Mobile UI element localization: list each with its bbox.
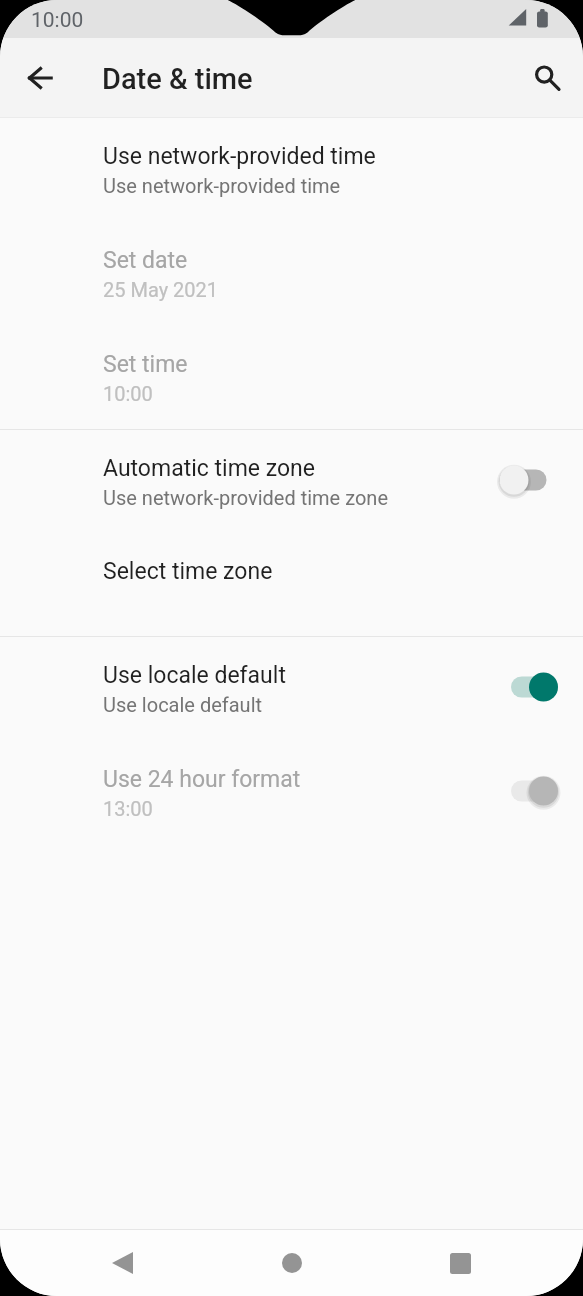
staticText: 10:00: [31, 8, 84, 33]
button[interactable]: On: [501, 770, 561, 812]
button[interactable]: Set time: [0, 326, 583, 430]
button[interactable]: Use network-provided time: [0, 118, 583, 222]
button[interactable]: Back: [38, 1230, 207, 1296]
staticText: Set time: [103, 351, 188, 378]
staticText: Use locale default: [103, 693, 263, 716]
button[interactable]: Recent apps: [376, 1230, 545, 1296]
staticText: Automatic time zone: [103, 455, 315, 482]
staticText: Date & time: [102, 62, 253, 96]
button[interactable]: Automatic time zone: [0, 430, 583, 534]
staticText: Select time zone: [103, 558, 273, 585]
button[interactable]: Off: [501, 459, 561, 501]
staticText: Use 24 hour format: [103, 766, 301, 793]
staticText: 10:00: [103, 382, 153, 405]
button[interactable]: Select time zone: [0, 533, 583, 637]
button[interactable]: On: [501, 666, 561, 708]
staticText: Set date: [103, 247, 188, 274]
button[interactable]: Search: [519, 49, 576, 106]
button[interactable]: Navigate up: [11, 49, 68, 106]
staticText: Use network-provided time zone: [103, 486, 389, 509]
button[interactable]: Home: [207, 1230, 376, 1296]
staticText: 13:00: [103, 797, 153, 820]
staticText: 25 May 2021: [103, 278, 219, 301]
button[interactable]: Use locale default: [0, 637, 583, 741]
staticText: Use network-provided time: [103, 143, 376, 170]
button[interactable]: Use 24 hour format: [0, 741, 583, 845]
button[interactable]: Set date: [0, 222, 583, 326]
staticText: Use locale default: [103, 662, 286, 689]
staticText: Use network-provided time: [103, 174, 341, 197]
